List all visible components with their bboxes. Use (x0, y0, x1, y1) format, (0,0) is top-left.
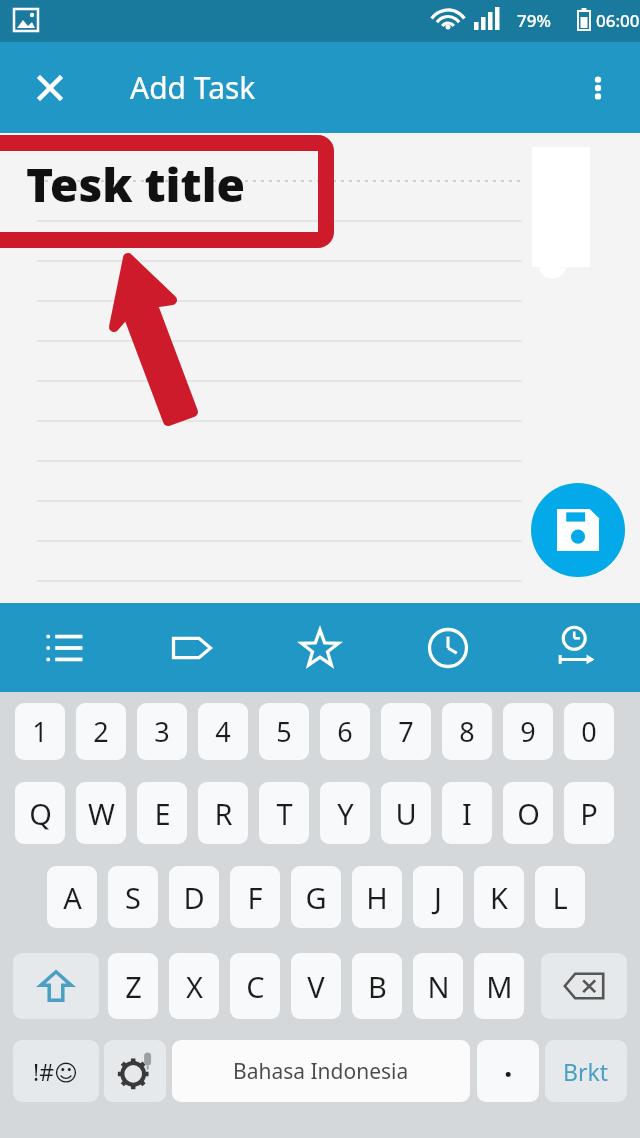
button[interactable]: 8 (442, 703, 492, 760)
staticText: !#☺ (33, 1056, 79, 1087)
staticText: T (276, 794, 293, 833)
button[interactable]: Save (531, 483, 625, 577)
button[interactable]: T (259, 782, 309, 844)
button[interactable]: Duration (512, 603, 640, 692)
staticText: 6 (337, 713, 353, 750)
staticText: 2 (93, 713, 109, 750)
staticText: P (580, 794, 598, 833)
button[interactable]: 3 (137, 703, 187, 760)
staticText: E (154, 794, 171, 833)
button[interactable]: Shift (13, 953, 99, 1019)
button[interactable]: 7 (381, 703, 431, 760)
staticText: G (305, 878, 327, 917)
button[interactable]: J (413, 866, 463, 928)
button[interactable]: Q (15, 782, 65, 844)
button[interactable]: V (291, 953, 341, 1019)
staticText: C (246, 967, 265, 1006)
button[interactable]: Close (20, 58, 80, 118)
staticText: V (307, 967, 325, 1006)
staticText: H (366, 878, 388, 917)
staticText: 79% (517, 9, 551, 32)
staticText: I (462, 794, 472, 833)
button[interactable]: Symbols (13, 1040, 99, 1102)
staticText: L (552, 878, 568, 917)
staticText: 1 (32, 713, 48, 750)
button[interactable]: Favorite (256, 603, 384, 692)
staticText: 8 (459, 713, 475, 750)
button[interactable]: More options (570, 60, 626, 116)
staticText: Bahasa Indonesia (233, 1057, 409, 1086)
staticText: O (517, 794, 540, 833)
button[interactable]: F (230, 866, 280, 928)
button[interactable]: S (108, 866, 158, 928)
staticText: Brkt (563, 1056, 609, 1087)
button[interactable]: G (291, 866, 341, 928)
staticText: Tesk title (26, 153, 246, 216)
staticText: Q (29, 794, 52, 833)
button[interactable]: 6 (320, 703, 370, 760)
button[interactable]: I (442, 782, 492, 844)
button[interactable]: 2 (76, 703, 126, 760)
button[interactable]: P (564, 782, 614, 844)
button[interactable]: 5 (259, 703, 309, 760)
button[interactable]: Y (320, 782, 370, 844)
button[interactable]: E (137, 782, 187, 844)
staticText: M (486, 967, 513, 1006)
button[interactable]: 4 (198, 703, 248, 760)
button[interactable]: A (47, 866, 97, 928)
button[interactable]: K (474, 866, 524, 928)
button[interactable]: B (352, 953, 402, 1019)
button[interactable]: D (169, 866, 219, 928)
staticText: W (88, 794, 115, 833)
button[interactable]: O (503, 782, 553, 844)
staticText: 7 (398, 713, 414, 750)
staticText: X (186, 967, 203, 1006)
button[interactable]: C (230, 953, 280, 1019)
button[interactable]: Settings (104, 1040, 166, 1102)
button[interactable]: List (0, 603, 128, 692)
staticText: 06:00 (596, 9, 640, 32)
staticText: U (395, 794, 417, 833)
staticText: D (183, 878, 205, 917)
button[interactable]: H (352, 866, 402, 928)
staticText: 4 (215, 713, 231, 750)
staticText: 5 (276, 713, 292, 750)
staticText: Y (337, 794, 354, 833)
staticText: K (490, 878, 508, 917)
staticText: . (504, 1045, 513, 1086)
staticText: N (427, 967, 450, 1006)
button[interactable]: N (413, 953, 463, 1019)
button[interactable]: M (474, 953, 524, 1019)
staticText: 9 (520, 713, 536, 750)
staticText: B (368, 967, 387, 1006)
staticText: S (125, 878, 141, 917)
staticText: Add Task (130, 67, 256, 108)
button[interactable]: R (198, 782, 248, 844)
button[interactable]: W (76, 782, 126, 844)
button[interactable]: U (381, 782, 431, 844)
staticText: Z (125, 967, 142, 1006)
button[interactable]: L (535, 866, 585, 928)
button[interactable]: 9 (503, 703, 553, 760)
staticText: F (247, 878, 263, 917)
button[interactable]: 1 (15, 703, 65, 760)
staticText: J (434, 878, 442, 917)
button[interactable]: 0 (564, 703, 614, 760)
button[interactable]: Backspace (541, 953, 627, 1019)
staticText: 0 (581, 713, 597, 750)
staticText: 3 (154, 713, 170, 750)
staticText: A (63, 878, 82, 917)
staticText: R (214, 794, 233, 833)
button[interactable]: Bahasa Indonesia (172, 1040, 470, 1102)
button[interactable]: Label (128, 603, 256, 692)
button[interactable]: Reminder (384, 603, 512, 692)
button[interactable]: Z (108, 953, 158, 1019)
button[interactable]: Brkt (545, 1040, 627, 1102)
button[interactable]: . (477, 1040, 539, 1102)
button[interactable]: X (169, 953, 219, 1019)
